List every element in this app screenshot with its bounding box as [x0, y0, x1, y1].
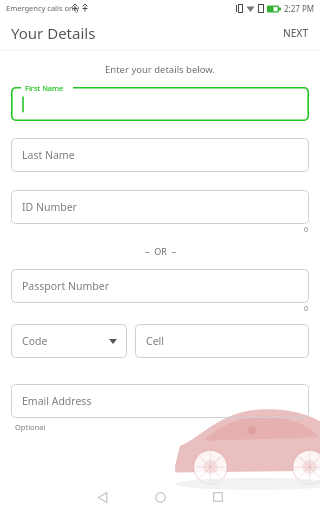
staticText: – OR – [145, 245, 176, 257]
staticText: Enter your details below. [105, 63, 215, 76]
button[interactable]: Last Name [11, 138, 309, 172]
staticText: 0 [304, 304, 309, 314]
staticText: 2:27 PM [284, 3, 315, 14]
staticText: Email Address [22, 394, 92, 408]
staticText: First Name [25, 83, 64, 93]
staticText: Optional [15, 422, 46, 432]
button[interactable]: Home [131, 482, 189, 512]
button[interactable]: Passport Number [11, 269, 309, 303]
staticText: Passport Number [22, 279, 109, 293]
button[interactable]: Code [11, 324, 127, 358]
staticText: Emergency calls only [6, 3, 80, 13]
staticText: NEXT [283, 26, 309, 40]
staticText: Cell [146, 334, 164, 348]
button[interactable]: NEXT [272, 18, 320, 48]
staticText: ID Number [22, 200, 77, 214]
staticText: Your Details [11, 23, 96, 43]
button[interactable]: ID Number [11, 190, 309, 224]
button[interactable]: Email Address [11, 384, 309, 418]
button[interactable]: First Name [11, 87, 309, 121]
button[interactable]: Back [73, 482, 131, 512]
staticText: 0 [304, 225, 309, 235]
staticText: Last Name [22, 148, 75, 162]
button[interactable]: Cell [135, 324, 309, 358]
staticText: Code [22, 334, 48, 348]
button[interactable]: Recent apps [189, 482, 247, 512]
